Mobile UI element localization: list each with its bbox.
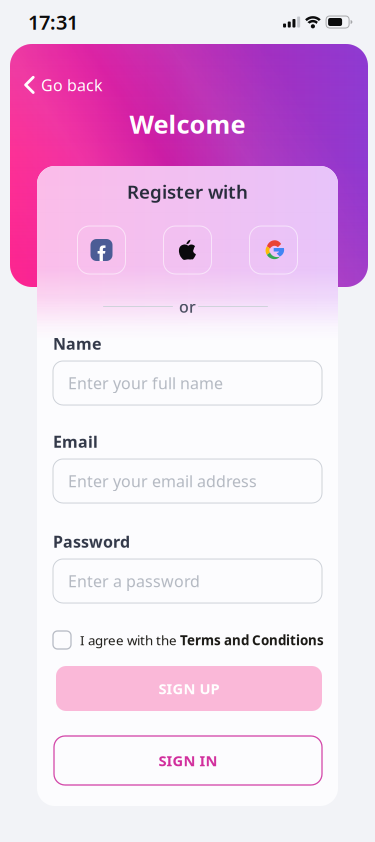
- staticText: SIGN IN: [158, 751, 217, 770]
- staticText: Enter a password: [68, 570, 200, 592]
- button[interactable]: Register with Google: [249, 226, 297, 274]
- button[interactable]: Enter your email address: [53, 459, 322, 503]
- staticText: Enter your email address: [68, 470, 257, 492]
- button[interactable]: Register with Apple: [163, 226, 211, 274]
- staticText: Go back: [41, 74, 103, 96]
- staticText: Password: [53, 531, 130, 552]
- button[interactable]: Enter a password: [53, 559, 322, 603]
- staticText: 17:31: [28, 9, 78, 35]
- button[interactable]: I agree with the Terms and Conditions: [53, 630, 338, 650]
- staticText: Email: [53, 431, 98, 452]
- staticText: or: [179, 296, 196, 317]
- staticText: Welcome: [129, 107, 245, 141]
- button[interactable]: SIGN IN: [54, 736, 322, 785]
- staticText: Register with: [127, 179, 248, 204]
- staticText: Enter your full name: [68, 372, 223, 394]
- button[interactable]: Register with Facebook: [77, 226, 125, 274]
- button[interactable]: Go back: [18, 68, 118, 102]
- staticText: I agree with the Terms and Conditions: [80, 631, 324, 649]
- button[interactable]: SIGN UP: [56, 666, 322, 711]
- button[interactable]: Enter your full name: [53, 361, 322, 405]
- staticText: Name: [53, 333, 102, 354]
- staticText: SIGN UP: [158, 679, 219, 698]
